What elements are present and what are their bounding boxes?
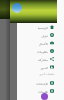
button[interactable]: Info (10, 47, 57, 55)
staticText: الصور (40, 66, 48, 69)
button[interactable]: Settings (10, 79, 57, 87)
button[interactable]: Share (10, 55, 57, 63)
staticText: تطبيقات أخرى (39, 72, 55, 76)
button[interactable]: Work (10, 39, 57, 47)
staticText: الإعدادات (36, 82, 48, 85)
button[interactable]: App (41, 93, 48, 100)
staticText: مشاركة (38, 58, 48, 61)
button[interactable]: Downloads (10, 31, 57, 39)
staticText: تعليمات (38, 90, 48, 93)
staticText: الرئيسية (37, 26, 48, 29)
button[interactable]: Photos (10, 63, 57, 71)
button[interactable]: Help (10, 87, 57, 95)
staticText: الأعمال (38, 42, 48, 45)
staticText: تنزيل (41, 34, 48, 37)
staticText: معلومات (37, 50, 48, 53)
button[interactable]: Profile picture (12, 3, 22, 13)
button[interactable]: Home (10, 23, 57, 31)
